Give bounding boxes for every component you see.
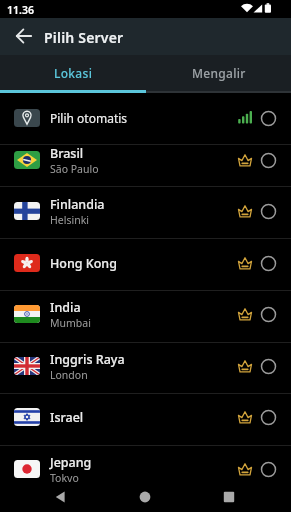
button[interactable] [127, 484, 163, 510]
staticText: São Paulo [50, 162, 99, 176]
button[interactable]: Pilih otomatis [0, 97, 291, 139]
staticText: Brasil [50, 145, 84, 162]
staticText: Finlandia [50, 196, 105, 213]
button[interactable]: Lokasi [0, 55, 146, 90]
button[interactable] [8, 20, 40, 52]
button[interactable] [43, 484, 79, 510]
staticText: Mumbai [50, 316, 91, 330]
button[interactable]: Mengalir [146, 55, 291, 90]
staticText: Helsinki [50, 213, 89, 227]
button[interactable]: Israel [0, 396, 291, 438]
button[interactable] [211, 484, 247, 510]
staticText: London [50, 368, 88, 382]
staticText: Lokasi [54, 65, 93, 81]
staticText: 11.36 [7, 3, 34, 17]
staticText: Tokyo [50, 471, 79, 485]
button[interactable]: Inggris Raya [0, 345, 291, 387]
button[interactable]: Hong Kong [0, 242, 291, 284]
button[interactable]: India [0, 293, 291, 335]
staticText: Israel [50, 409, 84, 426]
button[interactable]: Brasil [0, 139, 291, 181]
button[interactable]: Jepang [0, 448, 291, 490]
staticText: Pilih Server [44, 28, 124, 47]
staticText: Pilih otomatis [50, 110, 128, 126]
staticText: Jepang [50, 454, 92, 471]
staticText: Inggris Raya [50, 351, 125, 368]
staticText: Mengalir [192, 65, 246, 81]
staticText: Hong Kong [50, 255, 117, 272]
staticText: India [50, 299, 81, 316]
button[interactable]: Finlandia [0, 190, 291, 232]
